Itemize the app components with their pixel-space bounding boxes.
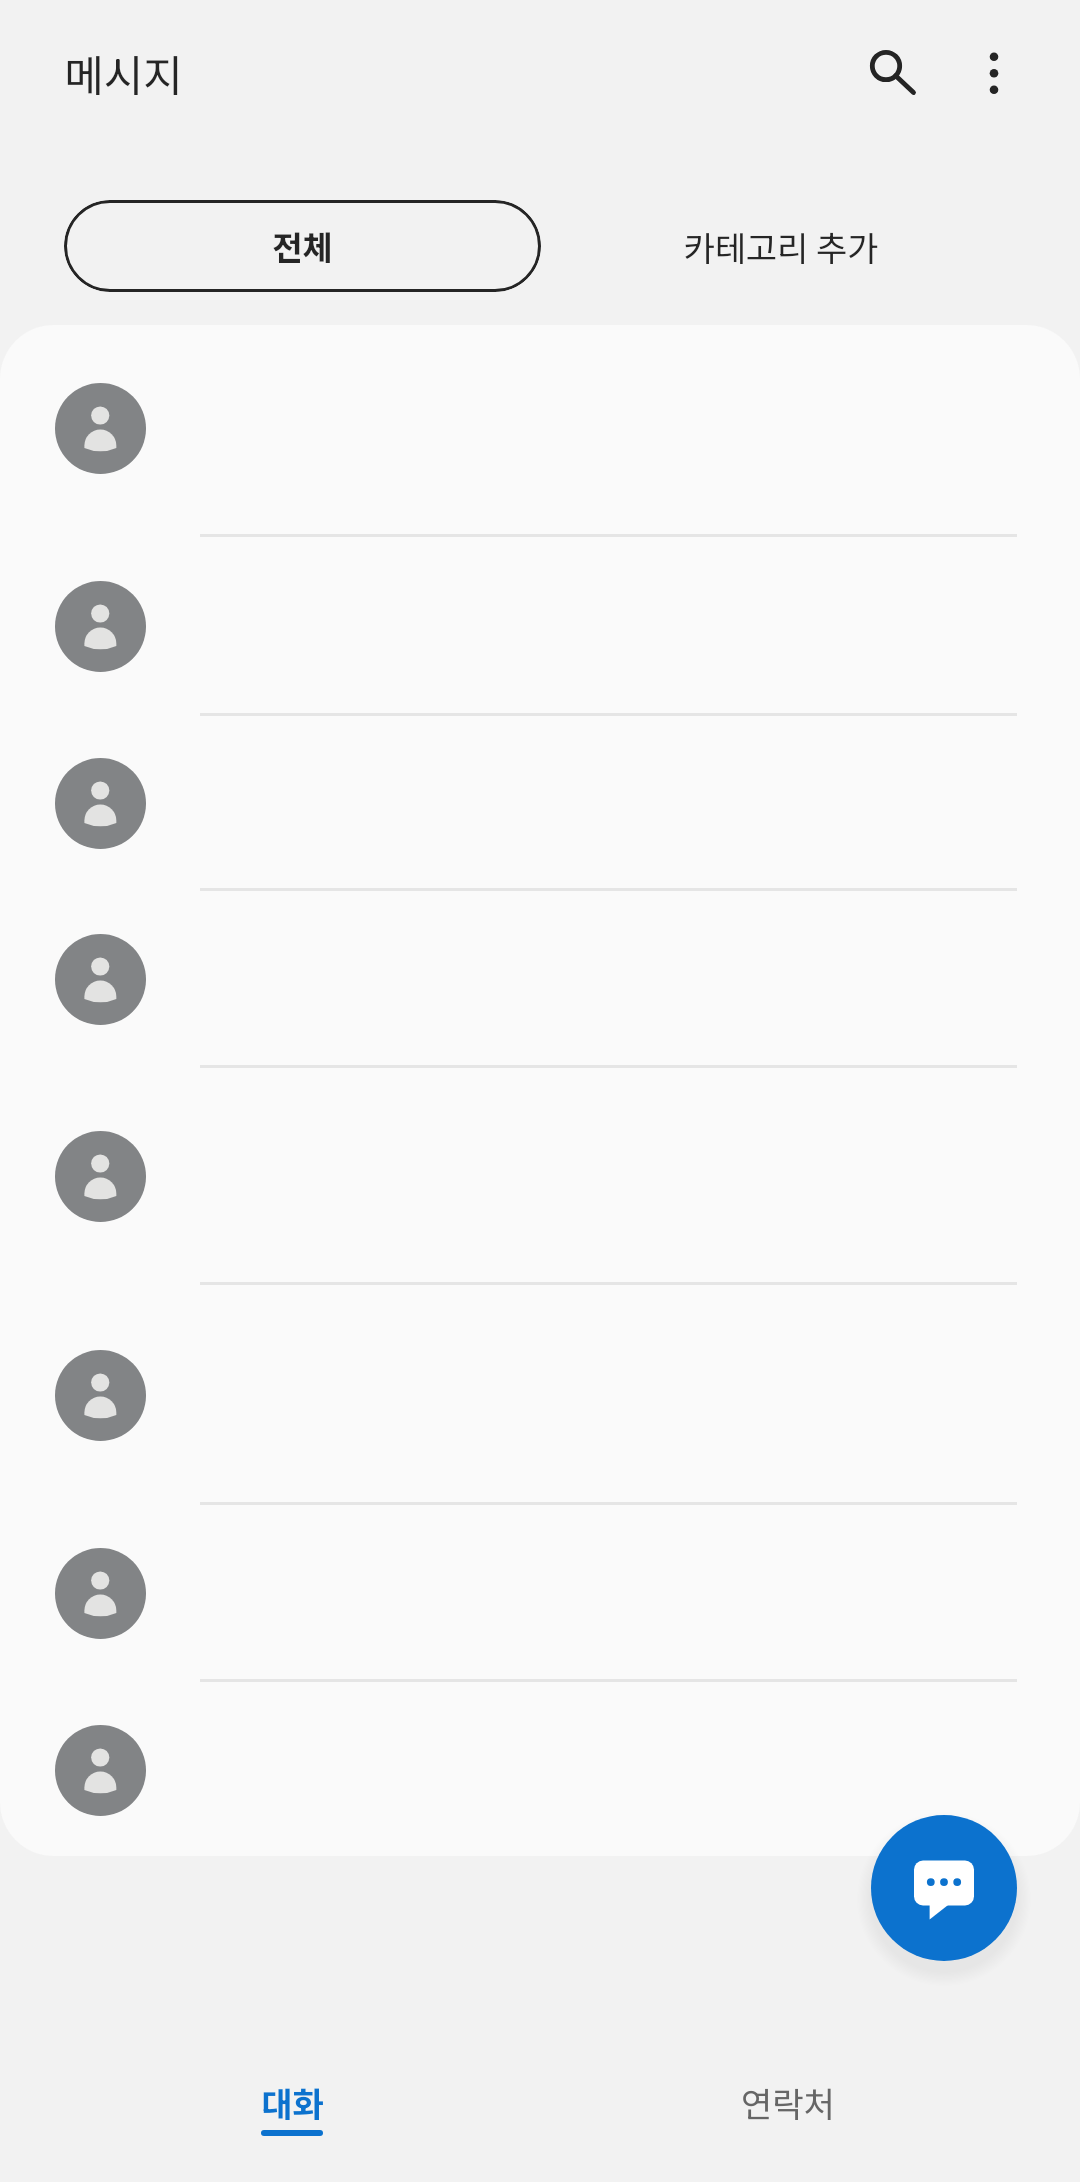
button[interactable]: 카테고리 추가	[560, 200, 1001, 292]
button[interactable]: 대화	[44, 2019, 540, 2182]
button[interactable]: 연락처	[540, 2019, 1036, 2182]
button[interactable]	[0, 325, 1080, 534]
button[interactable]	[0, 1502, 1080, 1679]
staticText: 메시지	[64, 42, 183, 104]
button[interactable]: New conversation	[871, 1815, 1017, 1961]
button[interactable]: Search	[835, 17, 943, 125]
button[interactable]	[0, 1065, 1080, 1282]
staticText: 연락처	[741, 2078, 835, 2127]
staticText: 카테고리 추가	[683, 222, 879, 271]
staticText: 전체	[272, 222, 333, 270]
button[interactable]	[0, 713, 1080, 888]
button[interactable]: More options	[940, 17, 1048, 125]
button[interactable]	[0, 1679, 1080, 1856]
button[interactable]	[0, 888, 1080, 1065]
staticText: 대화	[261, 2078, 324, 2127]
button[interactable]	[0, 534, 1080, 713]
button[interactable]	[0, 1282, 1080, 1502]
button[interactable]: 전체	[64, 200, 541, 292]
